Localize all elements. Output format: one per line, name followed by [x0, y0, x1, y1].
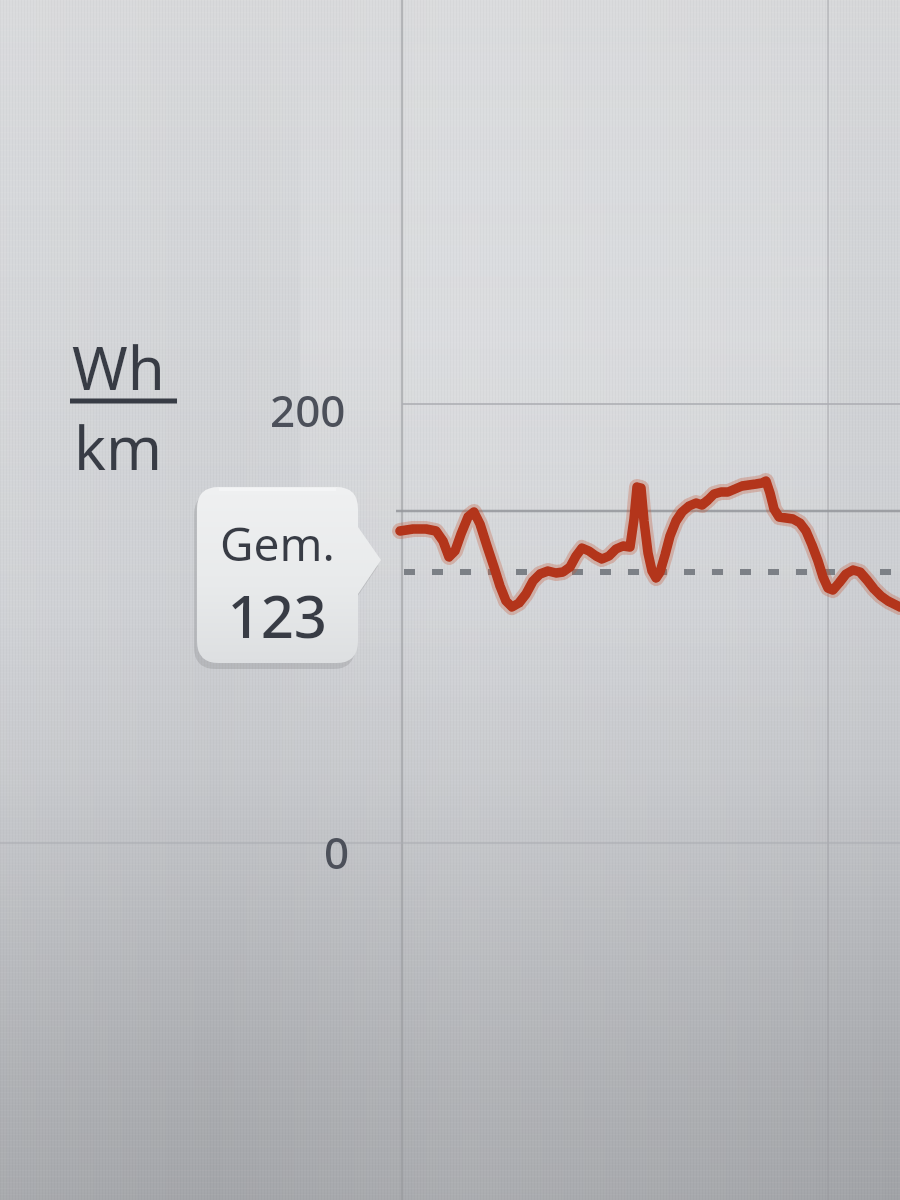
button[interactable]: Average consumption 123 watt hours per k… — [0, 0, 900, 1200]
